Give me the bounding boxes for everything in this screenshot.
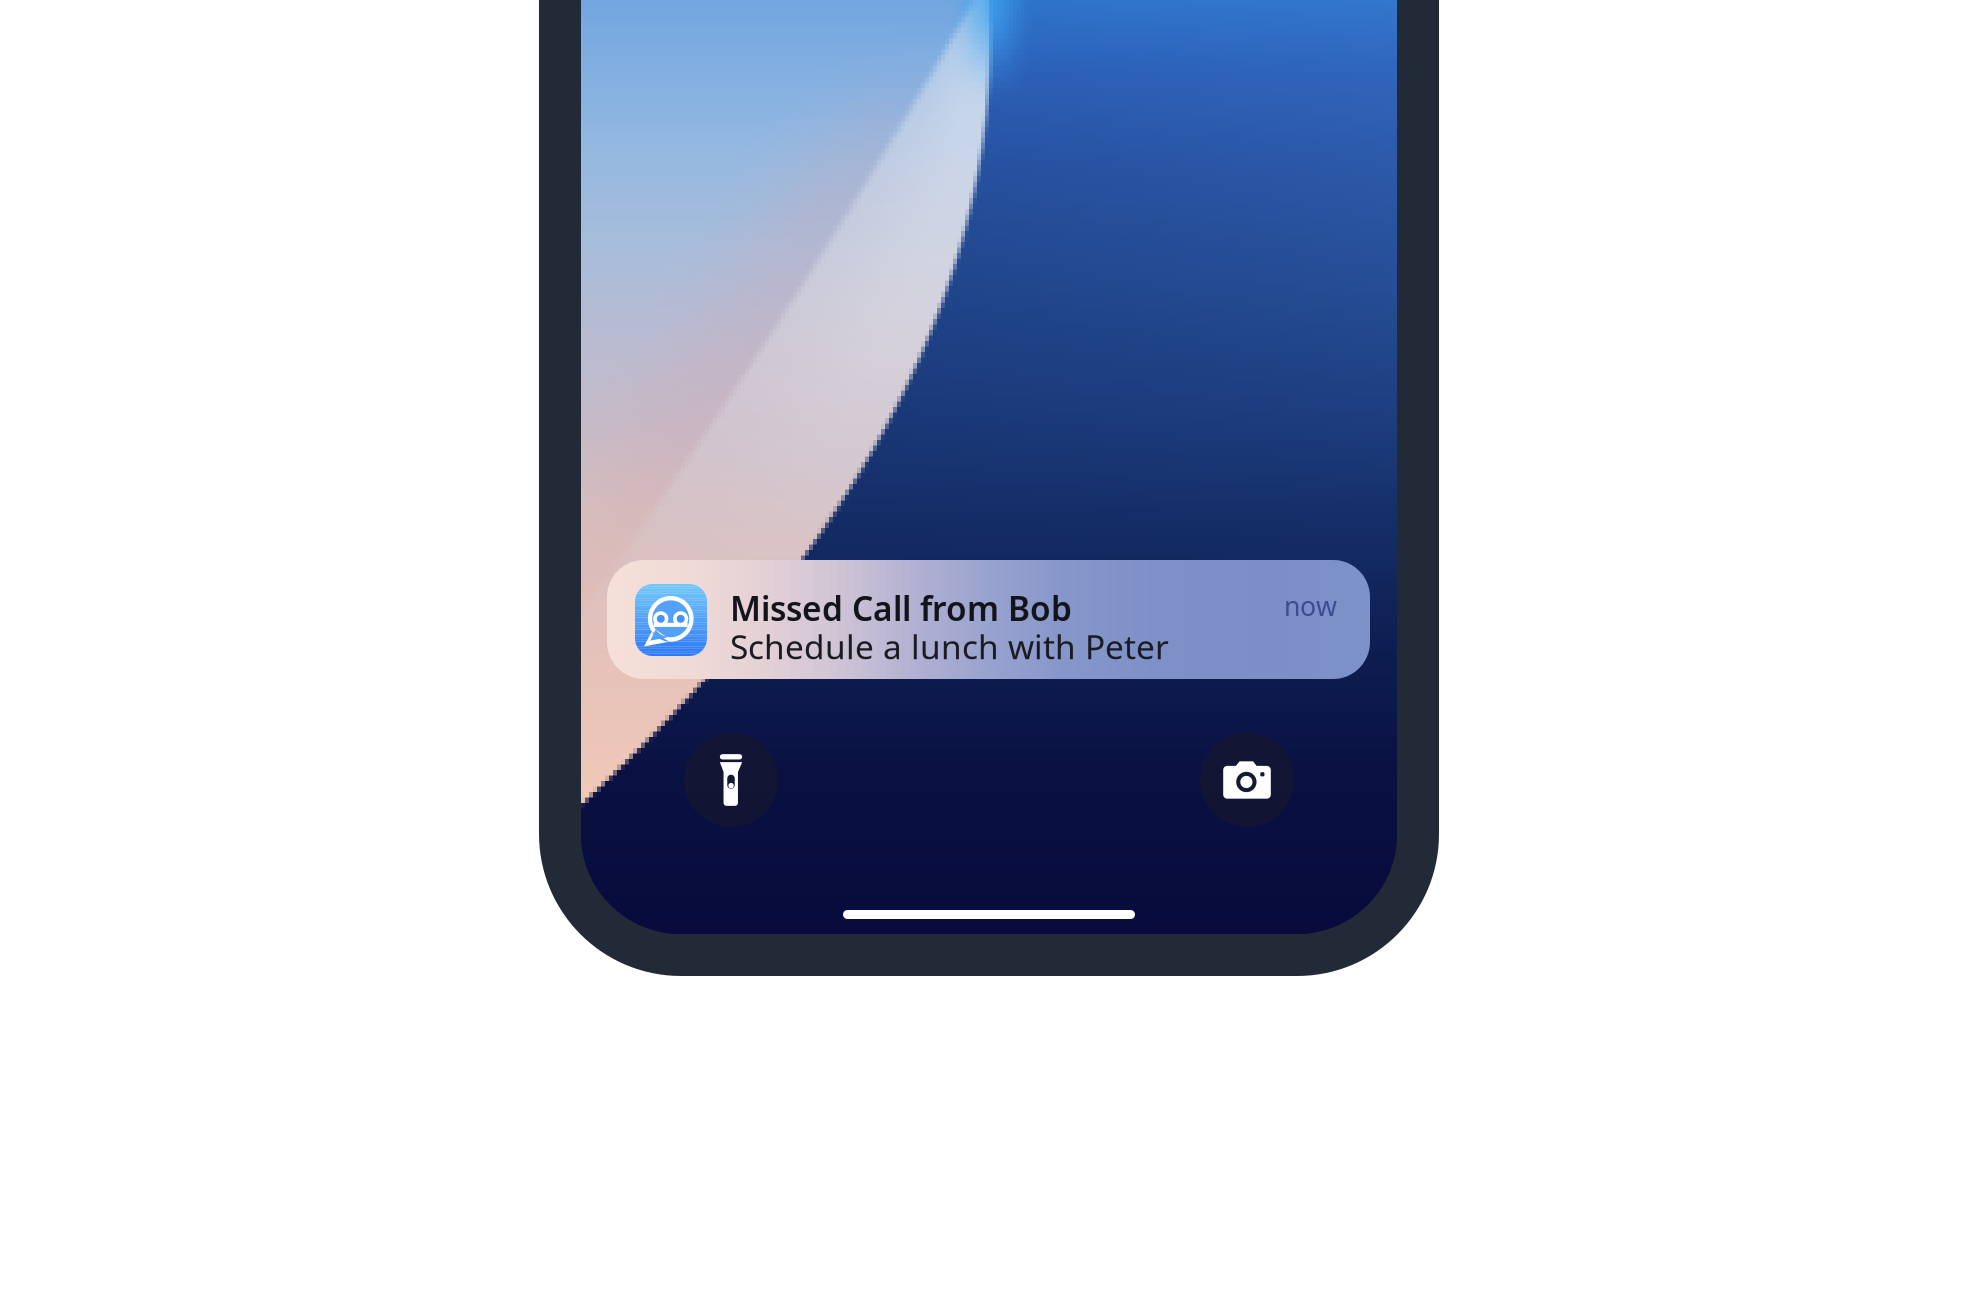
button[interactable]: Flashlight [684,733,778,827]
staticText: Schedule a lunch with Peter [730,624,1169,669]
button[interactable]: Missed Call from Bob [607,560,1370,679]
staticText: Missed Call from Bob [730,586,1072,630]
button[interactable]: Camera [1200,733,1294,827]
staticText: now [1284,588,1337,623]
